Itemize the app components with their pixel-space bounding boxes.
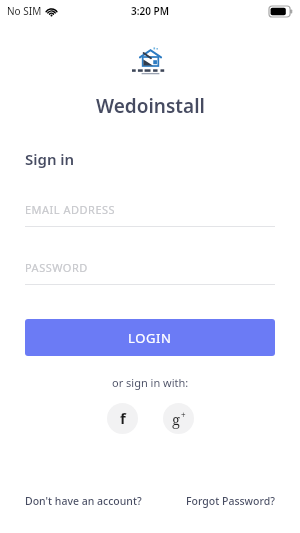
staticText: No SIM: [7, 4, 42, 18]
staticText: g: [172, 409, 181, 429]
staticText: Sign in: [25, 149, 75, 169]
button[interactable]: Sign in with Google: [163, 403, 194, 434]
staticText: +: [181, 409, 186, 420]
staticText: or sign in with:: [112, 375, 189, 390]
staticText: EMAIL ADDRESS: [25, 202, 116, 217]
staticText: Forgot Password?: [186, 494, 275, 508]
staticText: f: [120, 408, 126, 428]
staticText: Don't have an account?: [25, 494, 142, 508]
button[interactable]: LOGIN: [25, 319, 275, 356]
staticText: Wedoinstall: [96, 93, 205, 119]
staticText: LOGIN: [128, 329, 172, 347]
button[interactable]: Don't have an account?: [25, 489, 142, 513]
staticText: PASSWORD: [25, 260, 88, 275]
button[interactable]: Forgot Password?: [186, 489, 275, 513]
staticText: 3:20 PM: [131, 4, 169, 18]
button[interactable]: Sign in with Facebook: [107, 403, 138, 434]
